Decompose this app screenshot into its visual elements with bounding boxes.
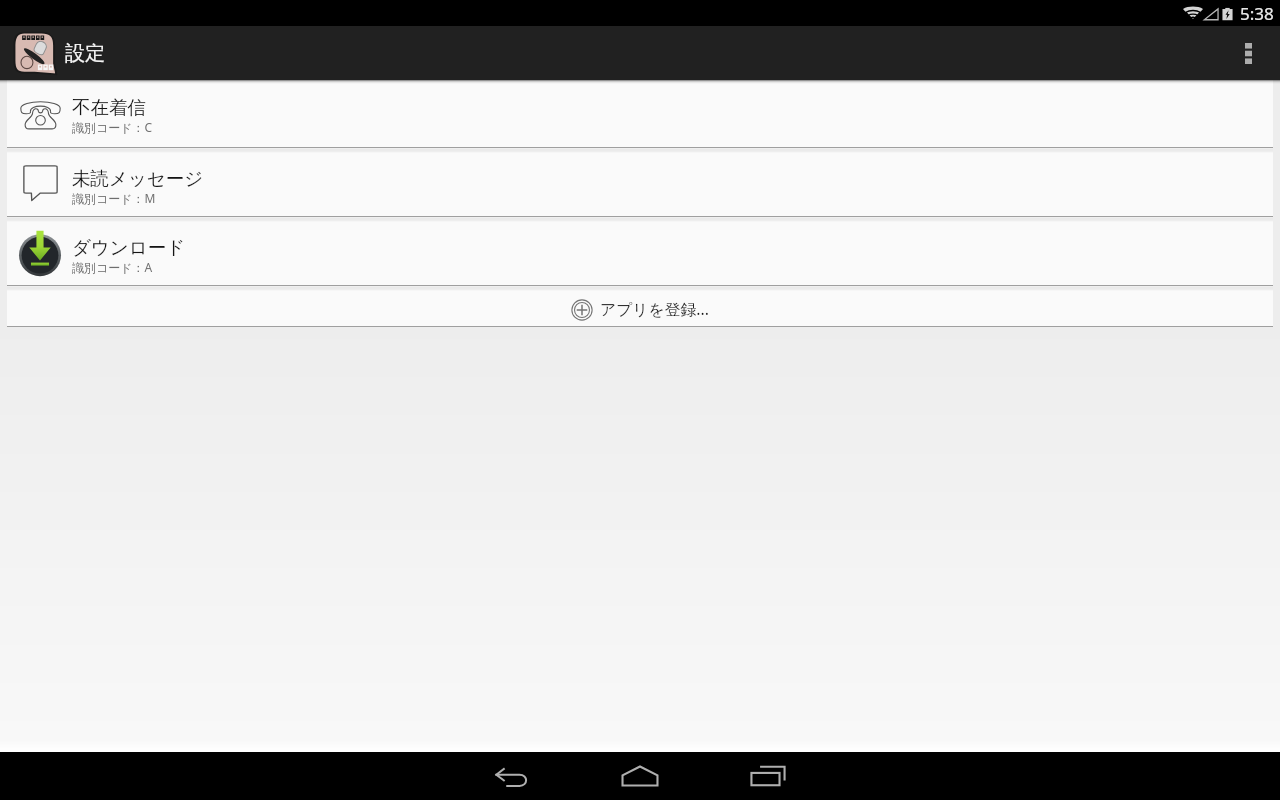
staticText: 5:38: [1240, 2, 1274, 25]
button[interactable]: ダウンロード: [7, 222, 1273, 285]
button[interactable]: 未読メッセージ: [7, 153, 1273, 216]
staticText: ダウンロード: [72, 236, 186, 259]
staticText: 識別コード：C: [72, 119, 153, 135]
button[interactable]: App icon: [13, 31, 58, 76]
button[interactable]: アプリを登録...: [7, 291, 1273, 326]
staticText: アプリを登録...: [600, 298, 709, 320]
button[interactable]: More options: [1216, 26, 1280, 80]
button[interactable]: 不在着信: [7, 80, 1273, 147]
button[interactable]: Home: [593, 752, 687, 800]
staticText: 未読メッセージ: [72, 167, 204, 190]
staticText: 識別コード：M: [72, 190, 156, 206]
staticText: 識別コード：A: [72, 259, 153, 275]
button[interactable]: Back: [465, 752, 559, 800]
button[interactable]: Recent apps: [721, 752, 815, 800]
staticText: 不在着信: [72, 96, 146, 119]
staticText: 設定: [65, 41, 105, 66]
